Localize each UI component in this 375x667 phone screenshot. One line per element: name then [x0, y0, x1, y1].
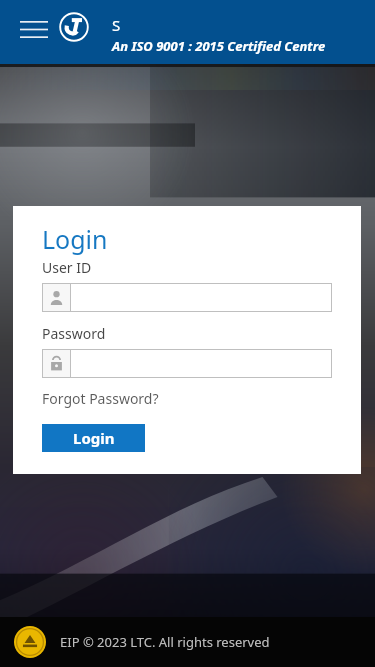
- button[interactable]: L and T logo: [57, 10, 91, 44]
- button[interactable]: Menu: [14, 14, 54, 44]
- staticText: Password: [42, 324, 106, 343]
- button[interactable]: Login: [42, 424, 145, 452]
- button[interactable]: [42, 349, 332, 378]
- staticText: S: [112, 15, 121, 35]
- button[interactable]: Forgot Password?: [42, 389, 159, 408]
- staticText: Login: [42, 222, 108, 256]
- staticText: User ID: [42, 258, 92, 277]
- staticText: Forgot Password?: [42, 389, 159, 408]
- staticText: EIP © 2023 LTC. All rights reserved: [60, 633, 270, 651]
- staticText: Login: [73, 428, 115, 448]
- button[interactable]: [42, 283, 332, 312]
- staticText: An ISO 9001 : 2015 Certified Centre: [112, 37, 326, 55]
